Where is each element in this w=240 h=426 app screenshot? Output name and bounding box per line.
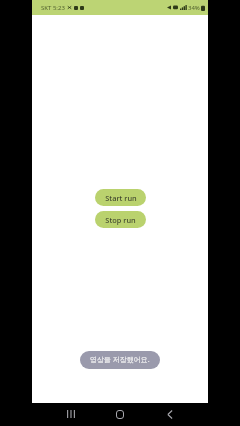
button[interactable]: Stop run (95, 211, 146, 228)
button[interactable]: Start run (95, 189, 146, 206)
staticText: Stop run (105, 215, 136, 225)
staticText: 34% (188, 4, 200, 12)
button[interactable]: Back (159, 403, 181, 425)
staticText: Start run (105, 193, 137, 203)
staticText: SKT 5:23 (41, 4, 65, 12)
button[interactable]: Recent apps (60, 403, 82, 425)
button[interactable]: Home (109, 403, 131, 425)
staticText: 영상을 저장했어요. (90, 355, 150, 365)
